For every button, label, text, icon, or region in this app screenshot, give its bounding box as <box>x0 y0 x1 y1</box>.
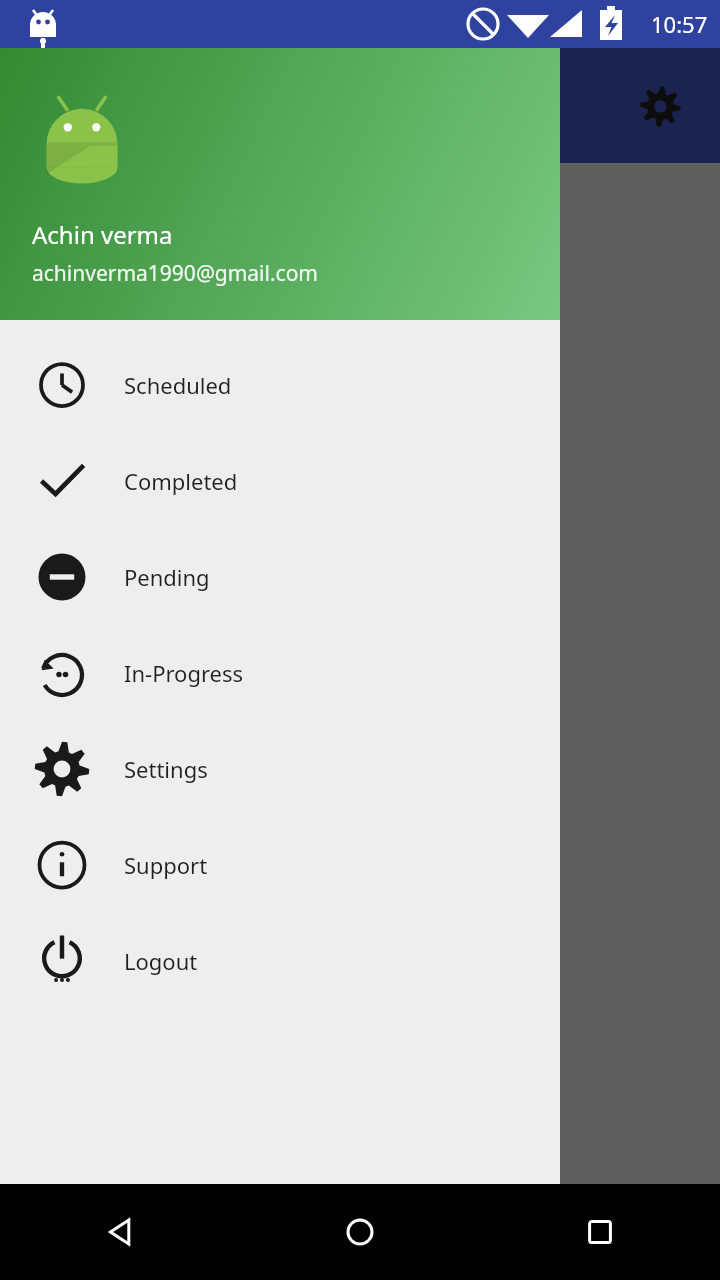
button[interactable]: Achin verma <box>0 48 560 320</box>
staticText: Achin verma <box>32 218 173 251</box>
staticText: Scheduled <box>124 370 232 400</box>
button[interactable]: In-Progress <box>0 625 560 721</box>
staticText: Support <box>124 850 208 880</box>
button[interactable]: Back <box>0 1184 240 1280</box>
button[interactable]: Search <box>496 70 568 142</box>
button[interactable]: Settings <box>0 721 560 817</box>
button[interactable]: Logout <box>0 913 560 1009</box>
staticText: In-Progress <box>124 658 244 688</box>
staticText: achinverma1990@gmail.com <box>32 259 318 288</box>
staticText: Pending <box>124 562 210 592</box>
staticText: Logout <box>124 946 198 976</box>
button[interactable]: Pending <box>0 529 560 625</box>
button[interactable]: Scheduled <box>0 337 560 433</box>
button[interactable]: Completed <box>0 433 560 529</box>
button[interactable]: Recents <box>480 1184 720 1280</box>
button[interactable]: Settings <box>624 70 696 142</box>
button[interactable]: Home <box>240 1184 480 1280</box>
staticText: Settings <box>124 754 208 784</box>
button[interactable]: Support <box>0 817 560 913</box>
staticText: 10:57 <box>651 9 708 39</box>
staticText: Completed <box>124 466 238 496</box>
